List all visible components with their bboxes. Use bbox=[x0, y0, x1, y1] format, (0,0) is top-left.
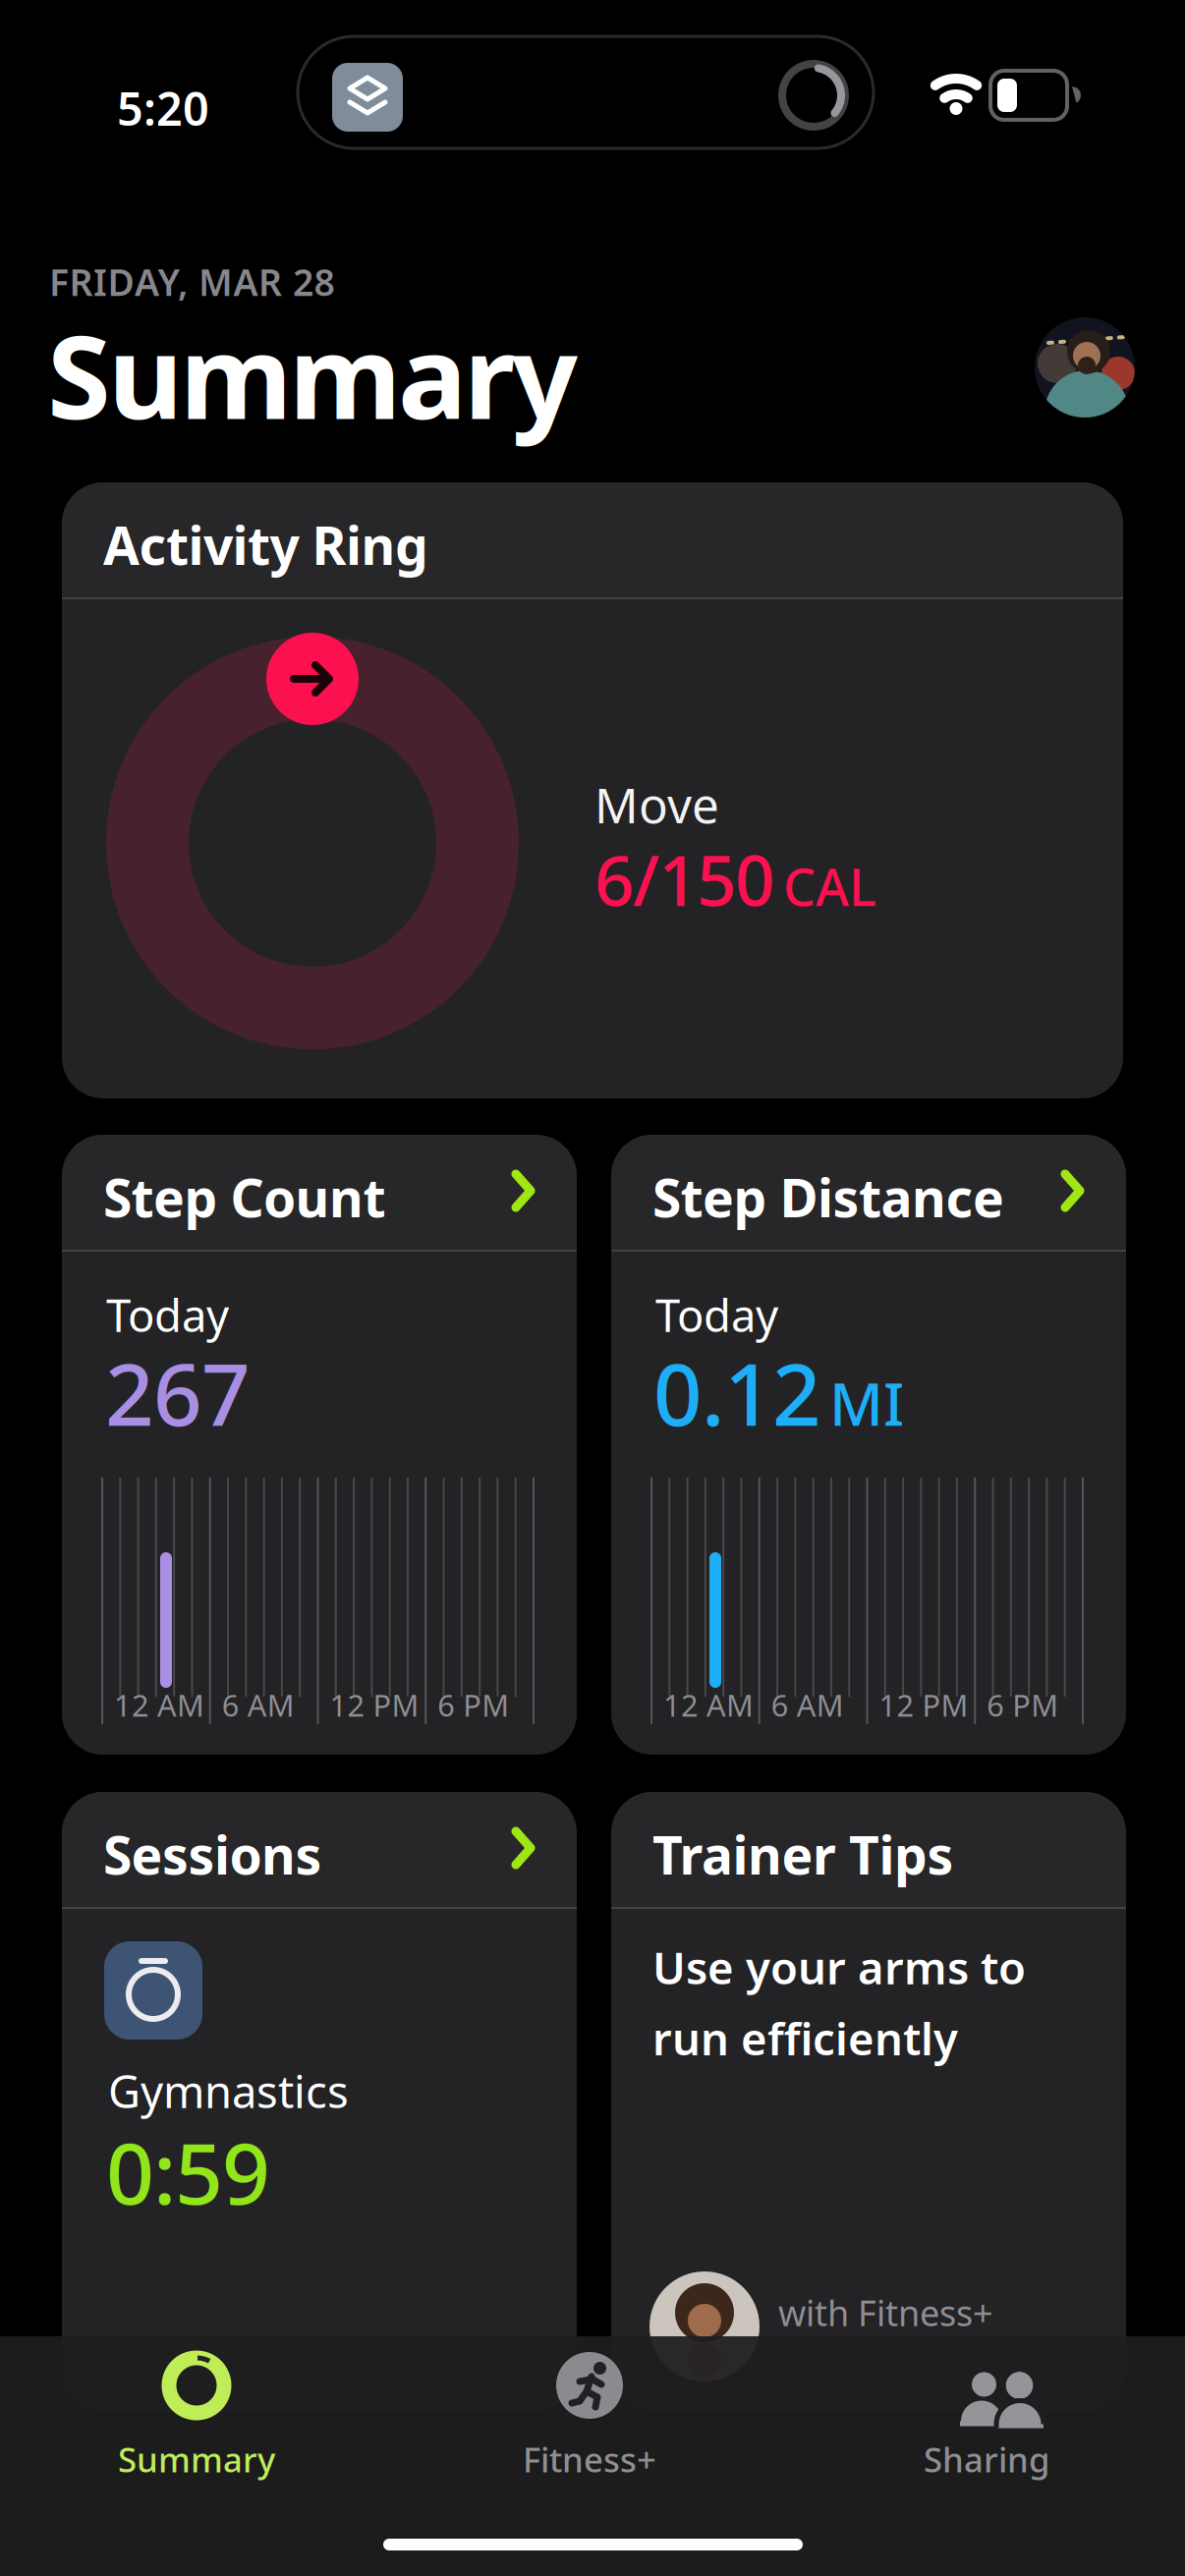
staticText: 6/150 bbox=[594, 833, 774, 925]
staticText: MI bbox=[829, 1364, 904, 1442]
staticText: Gymnastics bbox=[108, 2061, 349, 2120]
staticText: Activity Ring bbox=[103, 510, 428, 579]
staticText: 12 PM bbox=[330, 1685, 419, 1725]
button[interactable]: Sharing bbox=[839, 2350, 1134, 2482]
staticText: 12 AM bbox=[663, 1685, 754, 1725]
button[interactable]: Summary bbox=[49, 2350, 344, 2482]
staticText: 6 AM bbox=[771, 1685, 844, 1725]
button[interactable]: Step Count bbox=[62, 1135, 577, 1755]
staticText: 267 bbox=[105, 1336, 251, 1449]
staticText: 6 PM bbox=[987, 1685, 1058, 1725]
button[interactable]: Profile bbox=[1035, 317, 1135, 418]
staticText: 5:20 bbox=[117, 78, 209, 139]
staticText: Sharing bbox=[924, 2436, 1049, 2482]
staticText: Summary bbox=[118, 2436, 275, 2482]
staticText: FRIDAY, MAR 28 bbox=[49, 257, 335, 306]
staticText: Trainer Tips bbox=[652, 1820, 954, 1889]
staticText: Move bbox=[594, 772, 719, 837]
staticText: 0.12 bbox=[653, 1336, 821, 1449]
staticText: 12 PM bbox=[879, 1685, 968, 1725]
staticText: Today bbox=[106, 1285, 229, 1344]
staticText: 12 AM bbox=[114, 1685, 204, 1725]
staticText: 6 PM bbox=[437, 1685, 509, 1725]
staticText: Step Count bbox=[103, 1162, 386, 1232]
staticText: Summary bbox=[47, 298, 578, 451]
staticText: Sessions bbox=[103, 1820, 322, 1889]
staticText: with Fitness+ bbox=[778, 2289, 993, 2336]
staticText: Fitness+ bbox=[523, 2436, 656, 2482]
staticText: Today bbox=[655, 1285, 778, 1344]
button[interactable]: Fitness+ bbox=[442, 2350, 737, 2482]
staticText: 6 AM bbox=[222, 1685, 295, 1725]
staticText: CAL bbox=[783, 852, 876, 920]
button[interactable]: Step Distance bbox=[611, 1135, 1126, 1755]
staticText: Step Distance bbox=[652, 1162, 1004, 1232]
button[interactable]: Sessions bbox=[62, 1792, 577, 2412]
staticText: 0:59 bbox=[106, 2116, 270, 2228]
staticText: Use your arms to run efficiently bbox=[652, 1937, 1026, 2067]
